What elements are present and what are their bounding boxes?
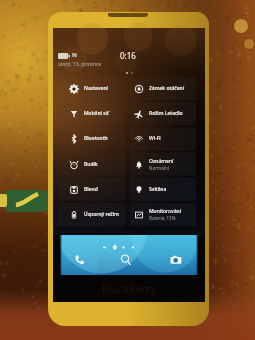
- button[interactable]: Phone: [69, 249, 91, 271]
- staticText: Wi-Fi: [149, 135, 161, 142]
- button[interactable]: Svítilna: [130, 178, 196, 201]
- staticText: BlackBerry: [102, 282, 157, 296]
- staticText: Bluetooth: [84, 135, 108, 142]
- staticText: Oznámení: [149, 158, 174, 165]
- button[interactable]: Search: [115, 249, 137, 271]
- staticText: Mobilní síť: [84, 110, 109, 117]
- button[interactable]: Oznámení: [130, 153, 196, 176]
- button[interactable]: Wi-Fi: [130, 127, 196, 150]
- staticText: úterý, 13. prosince: [58, 61, 102, 68]
- staticText: N: [72, 51, 77, 59]
- button[interactable]: Úsporný režim: [57, 203, 125, 226]
- staticText: Zámek otáčení: [149, 85, 185, 92]
- button[interactable]: Camera: [165, 249, 187, 271]
- staticText: 0:16: [120, 50, 136, 61]
- staticText: Monitorování: [149, 208, 182, 215]
- button[interactable]: Mobilní síť: [57, 102, 125, 125]
- staticText: Úsporný režim: [84, 211, 119, 218]
- staticText: Režim Letadlo: [149, 110, 183, 117]
- button[interactable]: Bluetooth: [57, 127, 125, 150]
- staticText: Svítilna: [149, 186, 167, 193]
- staticText: Normální: [149, 165, 169, 171]
- button[interactable]: Blend: [57, 178, 125, 201]
- button[interactable]: Monitorování: [130, 203, 196, 226]
- staticText: Budík: [84, 161, 98, 168]
- staticText: Blend: [84, 186, 98, 193]
- button[interactable]: Nastavení: [57, 77, 125, 100]
- button[interactable]: Zámek otáčení: [130, 77, 196, 100]
- staticText: Nastavení: [84, 85, 108, 92]
- staticText: Baterie: 13%: [149, 215, 176, 221]
- button[interactable]: Režim Letadlo: [130, 102, 196, 125]
- button[interactable]: Budík: [57, 153, 125, 176]
